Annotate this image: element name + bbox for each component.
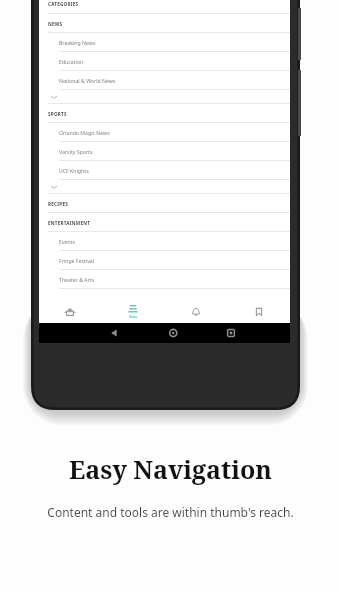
button[interactable]: SPORTS [39,104,290,123]
button[interactable]: UCF Knights [39,161,290,180]
staticText: Content and tools are within thumb's rea… [47,504,294,520]
button[interactable]: Alerts [164,300,227,323]
button[interactable]: Categories [101,300,164,323]
staticText: Breaking News [59,39,96,46]
button[interactable]: Home [39,300,101,323]
staticText: National & World News [59,77,116,84]
staticText: ENTERTAINMENT [48,220,91,226]
button[interactable]: Education [39,52,290,71]
button[interactable]: Breaking News [39,33,290,52]
staticText: CATEGORIES [48,1,79,7]
button[interactable]: ENTERTAINMENT [39,213,290,232]
button[interactable]: Show more [39,90,290,104]
staticText: RECIPES [48,201,69,207]
button[interactable]: Show more [39,180,290,194]
staticText: News [129,315,138,319]
button[interactable]: Fringe Festival [39,251,290,270]
staticText: Orlando Magic News [59,129,110,136]
button[interactable]: Theater & Arts [39,270,290,289]
staticText: Varsity Sports [59,148,93,155]
button[interactable]: National & World News [39,71,290,90]
staticText: Education [59,58,84,65]
button[interactable]: Events [39,232,290,251]
staticText: Events [59,238,76,245]
staticText: SPORTS [48,111,67,117]
staticText: NEWS [48,21,63,27]
button[interactable]: CATEGORIES [39,0,290,14]
button[interactable]: Varsity Sports [39,142,290,161]
button[interactable]: NEWS [39,14,290,33]
button[interactable]: RECIPES [39,194,290,213]
staticText: UCF Knights [59,167,89,174]
staticText: Theater & Arts [59,276,95,283]
staticText: Easy Navigation [69,452,272,486]
button[interactable]: Saved [227,300,290,323]
button[interactable]: Orlando Magic News [39,123,290,142]
staticText: Fringe Festival [59,257,95,264]
